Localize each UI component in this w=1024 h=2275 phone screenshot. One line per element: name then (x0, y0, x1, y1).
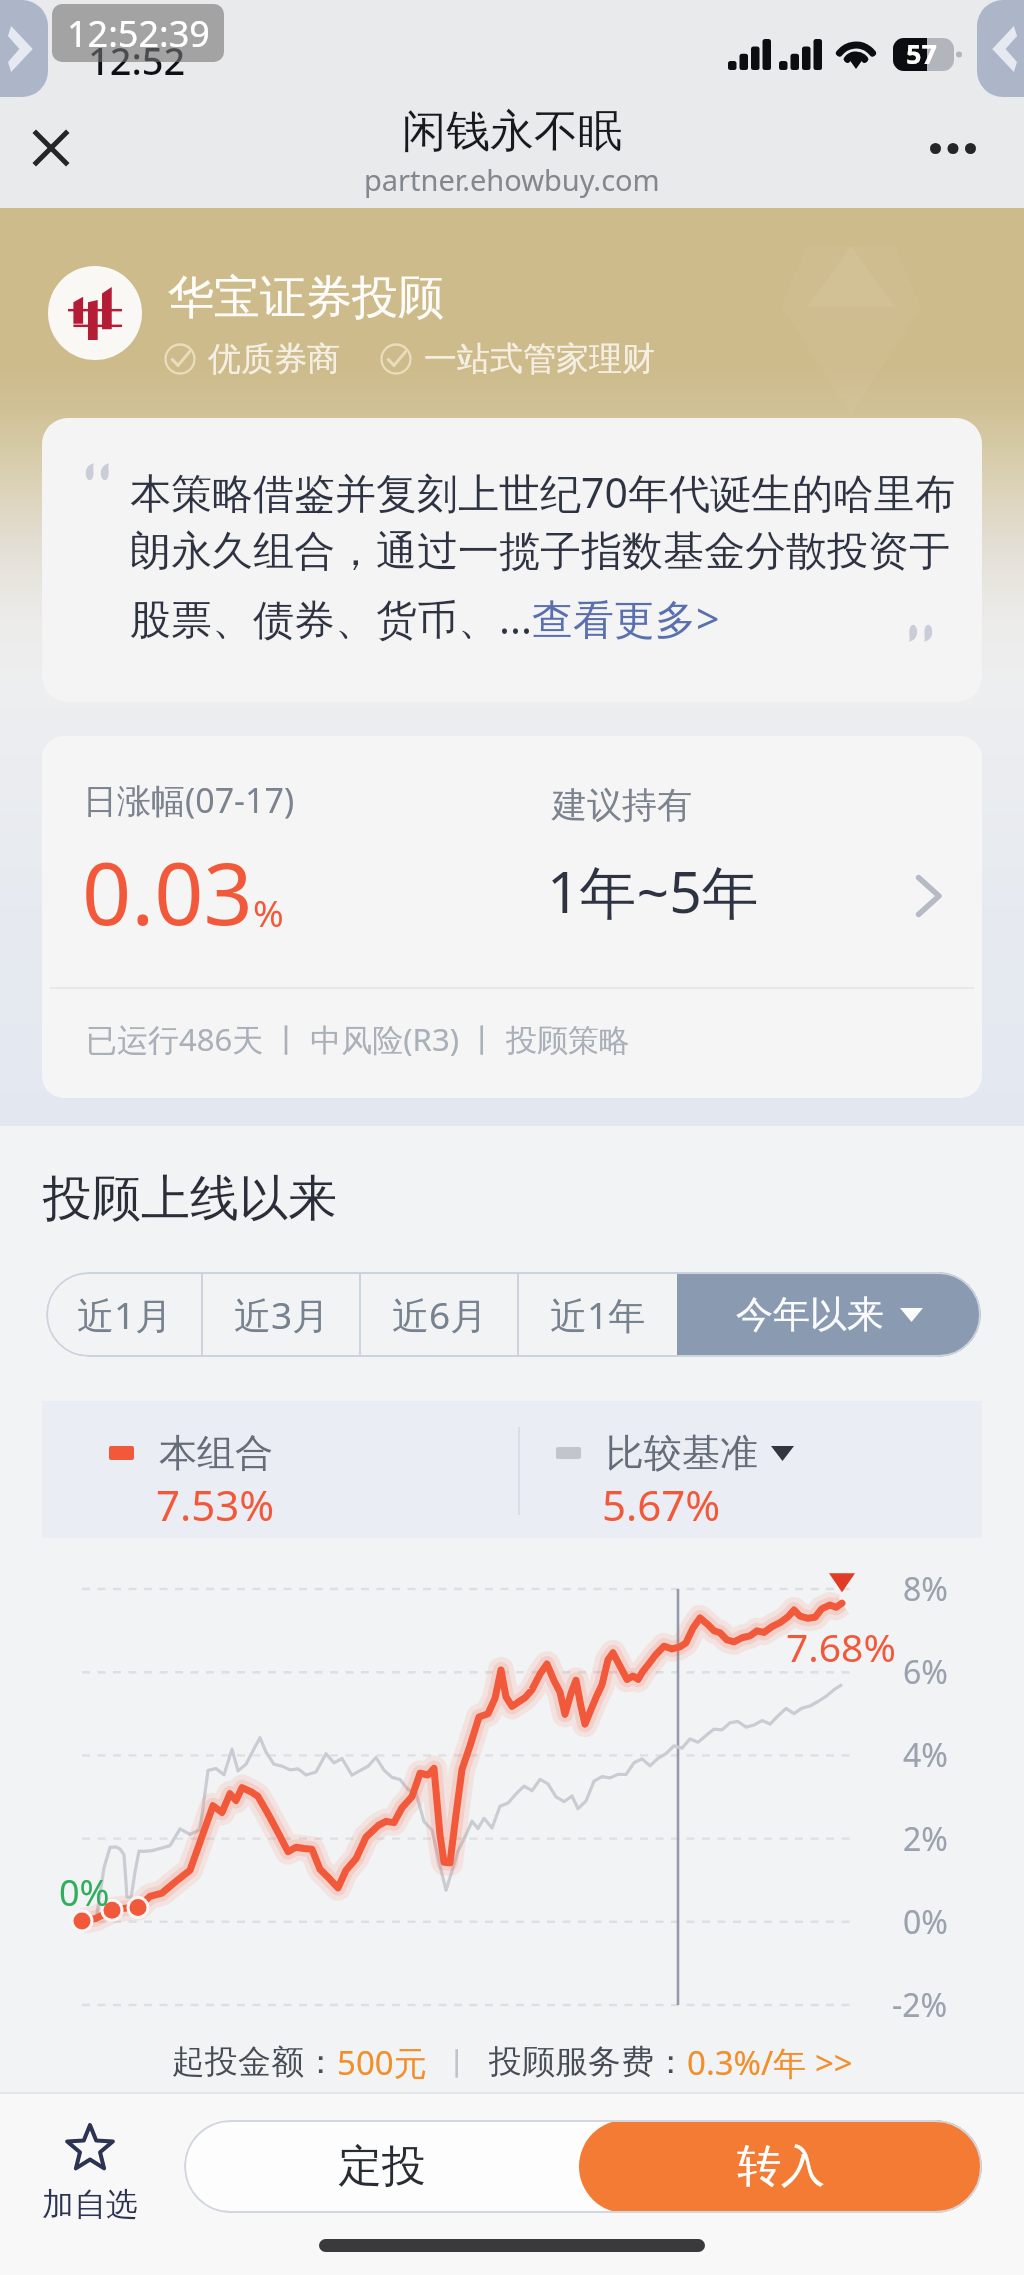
button[interactable]: 近3月 (203, 1272, 361, 1357)
staticText: 0.03 (82, 833, 253, 950)
staticText: 丨 (427, 2042, 489, 2083)
button[interactable]: 转入 (579, 2120, 982, 2213)
button[interactable]: Close (11, 108, 91, 188)
staticText: 7.53% (156, 1476, 275, 1533)
button[interactable]: Expand left (0, 0, 48, 97)
staticText: 投顾服务费： (489, 2041, 687, 2083)
staticText: 朗永久组合，通过一揽子指数基金分散投资于 (130, 526, 950, 578)
staticText: 今年以来 (736, 1291, 884, 1338)
staticText: 500元 (337, 2040, 427, 2085)
button[interactable]: 近6月 (361, 1272, 519, 1357)
button[interactable]: 本策略借鉴并复刻上世纪70年代诞生的哈里布 (42, 418, 982, 702)
button[interactable]: 一站式管家理财 (380, 338, 655, 380)
button[interactable]: 起投金额： (0, 2032, 1024, 2092)
staticText: 近1月 (77, 1289, 173, 1340)
button[interactable]: Expand right (977, 0, 1024, 97)
staticText: 加自选 (42, 2184, 138, 2224)
staticText: 定投 (338, 2139, 426, 2194)
staticText: 比较基准 (606, 1429, 758, 1477)
staticText: 0.3%/年 >> (687, 2040, 853, 2085)
staticText: 近1年 (550, 1289, 646, 1340)
staticText: 0% (903, 1900, 948, 1944)
button[interactable]: 日涨幅(07-17) (42, 736, 982, 1098)
staticText: 起投金额： (172, 2041, 337, 2083)
staticText: 2% (903, 1817, 948, 1861)
staticText: 8% (903, 1567, 948, 1611)
staticText: 5.67% (602, 1476, 721, 1533)
staticText: 股票、债券、货币、... (130, 590, 532, 646)
staticText: 0% (59, 1868, 110, 1917)
staticText: 本策略借鉴并复刻上世纪70年代诞生的哈里布 (130, 464, 956, 520)
staticText: 1年~5年 (547, 852, 759, 930)
staticText: 近6月 (392, 1289, 488, 1340)
staticText: 57 (906, 35, 937, 72)
staticText: 一站式管家理财 (424, 338, 655, 380)
staticText: partner.ehowbuy.com (364, 160, 660, 199)
button[interactable]: 近1月 (46, 1272, 203, 1357)
button[interactable]: 加自选 (28, 2122, 152, 2224)
staticText: 12:52 (88, 34, 186, 86)
staticText: 查看更多> (532, 590, 720, 646)
staticText: 投顾上线以来 (43, 1168, 337, 1230)
button[interactable]: 优质券商 (164, 338, 340, 380)
staticText: 已运行486天 丨 中风险(R3) 丨 投顾策略 (86, 1018, 631, 1060)
button[interactable]: Details (900, 866, 960, 926)
staticText: 6% (903, 1650, 948, 1694)
staticText: 4% (903, 1733, 948, 1777)
button[interactable]: 今年以来 (677, 1272, 981, 1357)
staticText: % (253, 887, 284, 937)
staticText: -2% (892, 1983, 948, 2027)
staticText: 本组合 (159, 1429, 273, 1477)
staticText: 近3月 (234, 1289, 330, 1340)
button[interactable]: 近1年 (519, 1272, 677, 1357)
staticText: 闲钱永不眠 (402, 104, 622, 159)
staticText: 优质券商 (208, 338, 340, 380)
staticText: 日涨幅(07-17) (83, 777, 295, 823)
staticText: 建议持有 (552, 783, 692, 827)
staticText: 华宝证券投顾 (168, 269, 444, 327)
staticText: 12:52:39 (67, 9, 210, 58)
button[interactable]: More options (912, 107, 994, 189)
staticText: 转入 (737, 2139, 825, 2194)
staticText: 7.68% (786, 1620, 896, 1673)
button[interactable]: 定投 (184, 2120, 579, 2213)
